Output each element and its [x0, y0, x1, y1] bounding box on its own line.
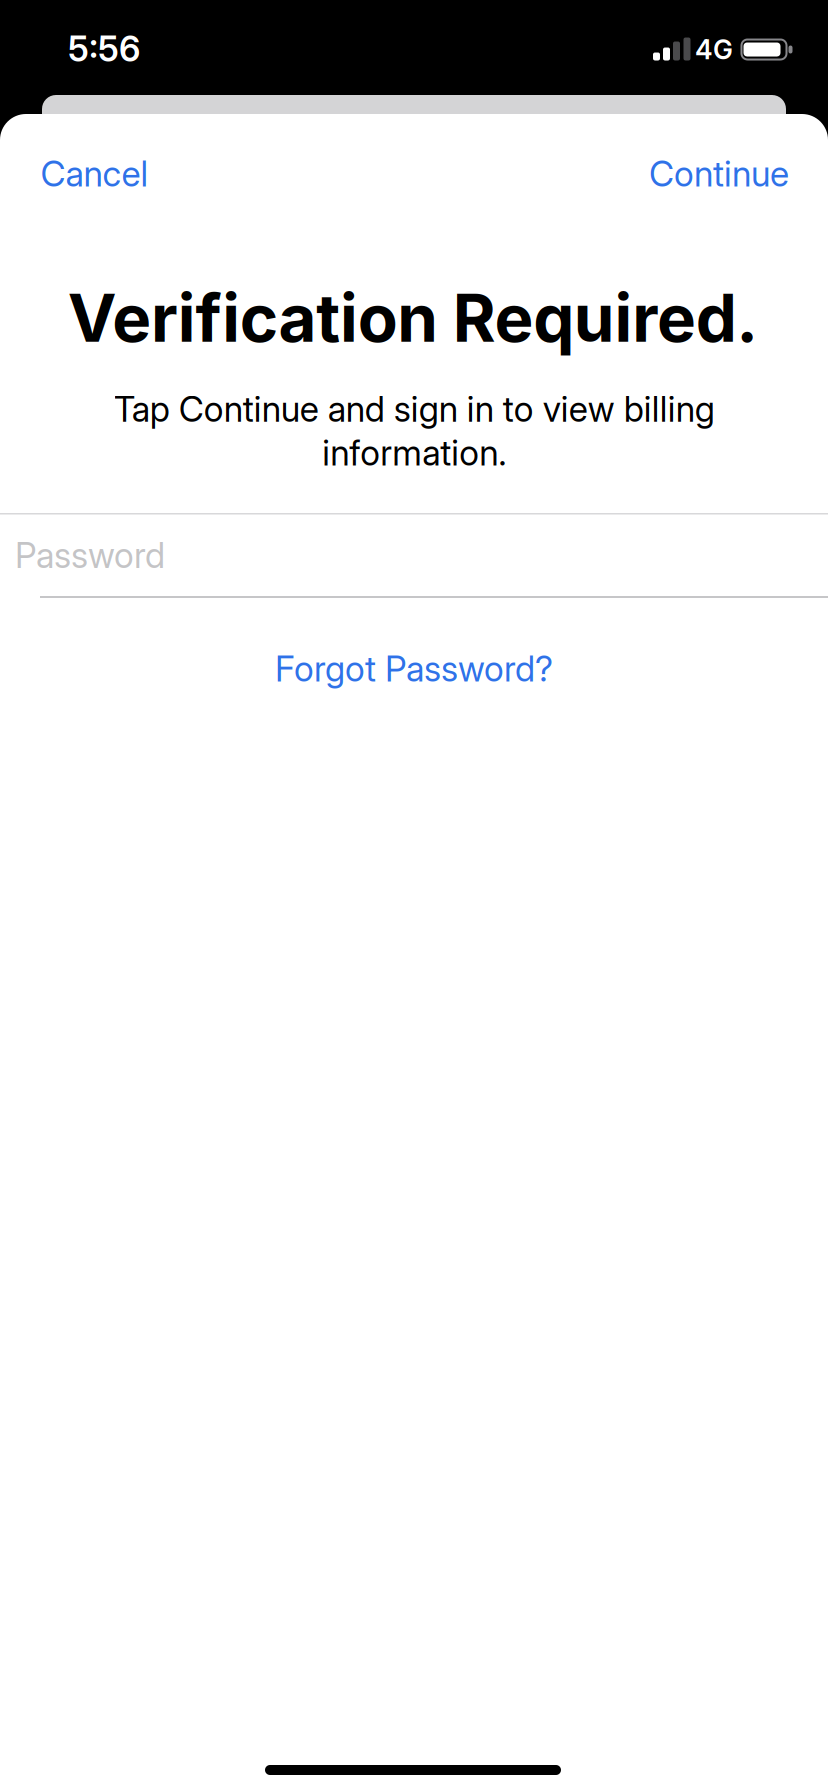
- staticText: Tap Continue and sign in to view billing…: [113, 389, 714, 473]
- staticText: 4G: [695, 34, 733, 65]
- staticText: Verification Required.: [68, 279, 758, 357]
- button[interactable]: Continue: [649, 154, 789, 194]
- staticText: Cancel: [40, 154, 148, 194]
- staticText: Continue: [649, 154, 789, 194]
- button[interactable]: Password: [0, 513, 828, 598]
- button[interactable]: Cancel: [40, 154, 148, 194]
- staticText: Forgot Password?: [275, 649, 553, 689]
- staticText: Password: [15, 535, 165, 576]
- staticText: 5:56: [68, 29, 140, 69]
- button[interactable]: Forgot Password?: [275, 649, 553, 689]
